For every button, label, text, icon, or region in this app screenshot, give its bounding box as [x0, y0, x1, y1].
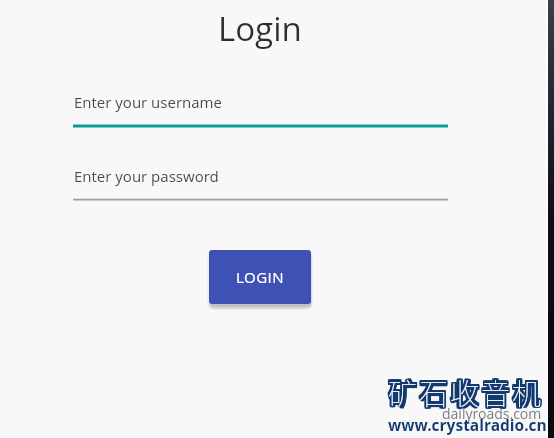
button[interactable]: Enter your username — [73, 86, 448, 128]
staticText: 矿石收音机 — [387, 372, 543, 414]
staticText: 矿石收音机 — [389, 371, 545, 413]
staticText: 矿石收音机 — [387, 370, 543, 412]
staticText: www.crystalradio.cn — [388, 414, 547, 435]
staticText: Enter your password — [74, 166, 219, 186]
staticText: 矿石收音机 — [388, 371, 544, 413]
button[interactable]: LOGIN — [209, 250, 311, 304]
staticText: Enter your username — [74, 92, 222, 112]
staticText: 矿石收音机 — [387, 371, 543, 413]
staticText: dailyroads.com — [442, 404, 542, 423]
staticText: 矿石收音机 — [388, 370, 544, 412]
staticText: 矿石收音机 — [389, 372, 545, 414]
staticText: 矿石收音机 — [389, 370, 545, 412]
staticText: 矿石收音机 — [388, 371, 544, 413]
staticText: LOGIN — [236, 267, 285, 287]
staticText: 矿石收音机 — [388, 372, 544, 414]
staticText: Login — [218, 6, 302, 51]
button[interactable]: Enter your password — [73, 160, 448, 202]
other: crystalradio.cn watermark — [386, 370, 548, 438]
